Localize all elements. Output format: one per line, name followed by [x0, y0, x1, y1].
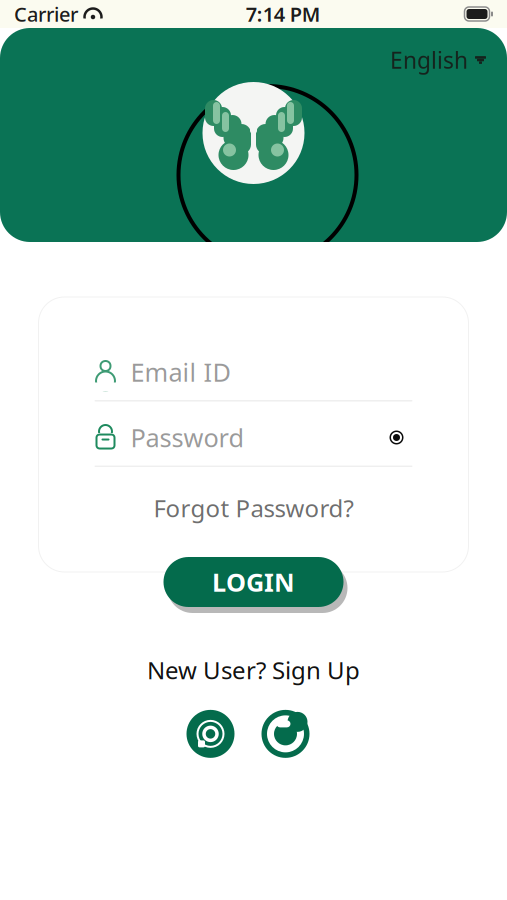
staticText: Password: [130, 421, 244, 454]
staticText: New User? Sign Up: [147, 654, 360, 686]
staticText: 7:14 PM: [246, 1, 321, 27]
button[interactable]: WhatsApp: [184, 708, 236, 760]
button[interactable]: LOGIN: [157, 552, 349, 612]
button[interactable]: English: [385, 40, 491, 80]
staticText: Forgot Password?: [153, 492, 353, 524]
button[interactable]: Call: [248, 708, 322, 760]
button[interactable]: Forgot Password?: [143, 487, 363, 529]
staticText: LOGIN: [212, 565, 295, 599]
button[interactable]: Show password: [380, 423, 412, 451]
staticText: Carrier: [14, 1, 78, 27]
staticText: English: [390, 45, 468, 75]
staticText: Email ID: [130, 355, 230, 389]
